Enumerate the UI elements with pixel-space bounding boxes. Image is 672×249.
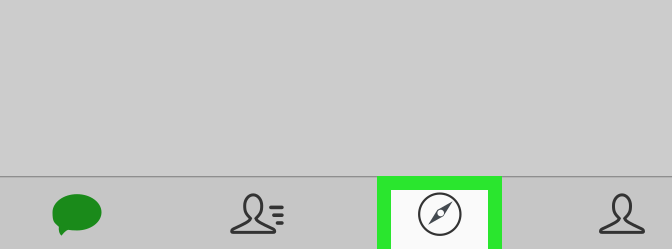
button[interactable]: Me (504, 176, 672, 249)
button[interactable]: Discover (336, 176, 504, 249)
button[interactable]: Contacts (168, 176, 336, 249)
button[interactable]: Chats (0, 176, 168, 249)
